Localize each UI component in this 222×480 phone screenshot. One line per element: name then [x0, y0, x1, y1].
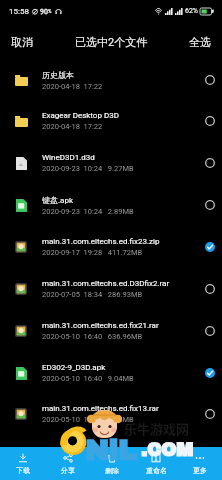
staticText: main.31.com.eltechs.ed.fix23.zip	[42, 237, 160, 246]
button[interactable]: Select	[201, 405, 219, 423]
button[interactable]: Exagear Desktop D3D	[0, 100, 222, 142]
button[interactable]: 更多	[178, 447, 222, 480]
button[interactable]: 历史版本	[0, 59, 222, 101]
button[interactable]: 全选	[178, 29, 222, 55]
staticText: main.31.com.eltechs.ed.fix21.rar	[42, 321, 159, 330]
staticText: 全选	[189, 35, 211, 49]
staticText: 2020-05-10 16:40 9.04MB	[42, 415, 134, 424]
staticText: 历史版本	[42, 70, 74, 80]
staticText: 2020-04-18 17:22	[42, 122, 103, 131]
staticText: Exagear Desktop D3D	[42, 111, 119, 120]
staticText: 键盘.apk	[42, 195, 74, 205]
staticText: ED302-9_D3D.apk	[42, 363, 106, 372]
staticText: 15:58	[9, 7, 29, 16]
button[interactable]: 删除	[90, 447, 134, 480]
staticText: .COM	[141, 440, 193, 460]
button[interactable]: main.31.com.eltechs.ed.fix21.rar	[0, 310, 222, 352]
staticText: 2020-07-05 18:34 286.93MB	[42, 290, 143, 299]
staticText: NiL	[85, 435, 137, 465]
staticText: 2020-09-23 10:24 2.89MB	[42, 207, 134, 216]
staticText: 下载	[16, 466, 30, 475]
button[interactable]: 分享	[45, 447, 90, 480]
staticText: 2020-05-10 16:40 636.96MB	[42, 332, 143, 341]
staticText: WineD3D1.d3d	[42, 153, 95, 162]
button[interactable]: ED302-9_D3D.apk	[0, 352, 222, 394]
staticText: 62%	[185, 7, 198, 15]
button[interactable]: Select	[201, 154, 219, 172]
button[interactable]: Select	[201, 322, 219, 340]
staticText: 已选中2个文件	[75, 35, 148, 49]
staticText: %	[48, 9, 52, 14]
staticText: 更多	[193, 466, 207, 475]
button[interactable]: Select	[201, 71, 219, 89]
staticText: 分享	[61, 466, 75, 475]
button[interactable]: main.31.com.eltechs.ed.fix23.zip	[0, 226, 222, 268]
button[interactable]: main.31.com.eltechs.ed.fix13.rar	[0, 393, 222, 435]
button[interactable]: main.31.com.eltechs.ed.D3Dfix2.rar	[0, 268, 222, 310]
button[interactable]: Select	[201, 112, 219, 130]
staticText: main.31.com.eltechs.ed.D3Dfix2.rar	[42, 279, 170, 288]
staticText: 取消	[11, 35, 33, 49]
staticText: 重命名	[146, 466, 167, 475]
button[interactable]: 下载	[0, 447, 45, 480]
button[interactable]: 键盘.apk	[0, 184, 222, 226]
staticText: 乐牛游戏网	[124, 419, 190, 438]
staticText: 2020-05-10 16:40 9.04MB	[42, 374, 134, 383]
staticText: 2020-09-17 19:28 411.72MB	[42, 248, 143, 257]
button[interactable]: 取消	[0, 29, 44, 55]
staticText: 2020-09-23 10:24 9.27MB	[42, 164, 134, 173]
button[interactable]: Select	[201, 364, 219, 382]
button[interactable]: Select	[201, 280, 219, 298]
button[interactable]: 重命名	[134, 447, 178, 480]
button[interactable]: WineD3D1.d3d	[0, 142, 222, 184]
staticText: 删除	[105, 466, 119, 475]
staticText: 90	[40, 8, 48, 16]
staticText: main.31.com.eltechs.ed.fix13.rar	[42, 404, 159, 413]
button[interactable]: Select	[201, 238, 219, 256]
button[interactable]: Select	[201, 196, 219, 214]
staticText: 2020-04-18 17:22	[42, 82, 103, 91]
